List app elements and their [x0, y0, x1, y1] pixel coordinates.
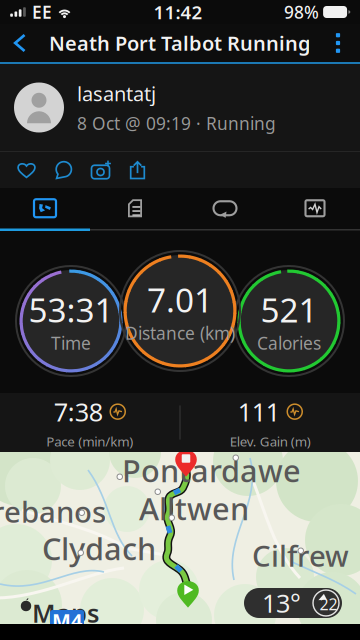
staticText: Maps [32, 596, 99, 630]
button[interactable]: Like [8, 155, 45, 185]
staticText: lasantatj [77, 80, 156, 107]
staticText: Time [51, 332, 91, 355]
staticText: 98% [284, 0, 319, 23]
staticText: Pontardawe [122, 450, 301, 491]
staticText: 53:31 [28, 287, 113, 332]
button[interactable]: Laps [180, 188, 270, 228]
staticText: 22 [319, 593, 337, 615]
staticText: 7.01 [147, 277, 213, 322]
staticText: M4 [52, 607, 82, 634]
staticText: Clydach [42, 528, 156, 569]
staticText: 11:42 [154, 0, 203, 24]
staticText: 13° [262, 586, 301, 620]
button[interactable]: Comment [45, 155, 82, 185]
staticText: Alltwen [139, 488, 249, 529]
button[interactable]: Share [119, 155, 156, 185]
staticText: Calories [257, 332, 321, 355]
button[interactable]: Overview [0, 188, 90, 228]
staticText: rebanos [0, 492, 106, 531]
staticText: Distance (km) [125, 322, 235, 345]
button[interactable]: Charts [270, 188, 360, 228]
staticText: 7:38 [54, 395, 103, 428]
button[interactable]: More options [316, 24, 360, 62]
button[interactable]: Back [0, 24, 40, 62]
button[interactable]: Add photo [82, 155, 119, 185]
button[interactable]: Details [90, 188, 180, 228]
staticText: Elev. Gain (m) [230, 432, 311, 450]
staticText: EE [32, 0, 52, 23]
staticText: 521 [260, 287, 317, 332]
staticText: 111 [238, 395, 280, 428]
staticText: Pace (min/km) [46, 432, 133, 450]
staticText: Neath Port Talbot Running [49, 30, 311, 56]
staticText: 8 Oct @ 09:19 · Running [77, 112, 276, 135]
staticText: Cilfrew [252, 536, 349, 575]
